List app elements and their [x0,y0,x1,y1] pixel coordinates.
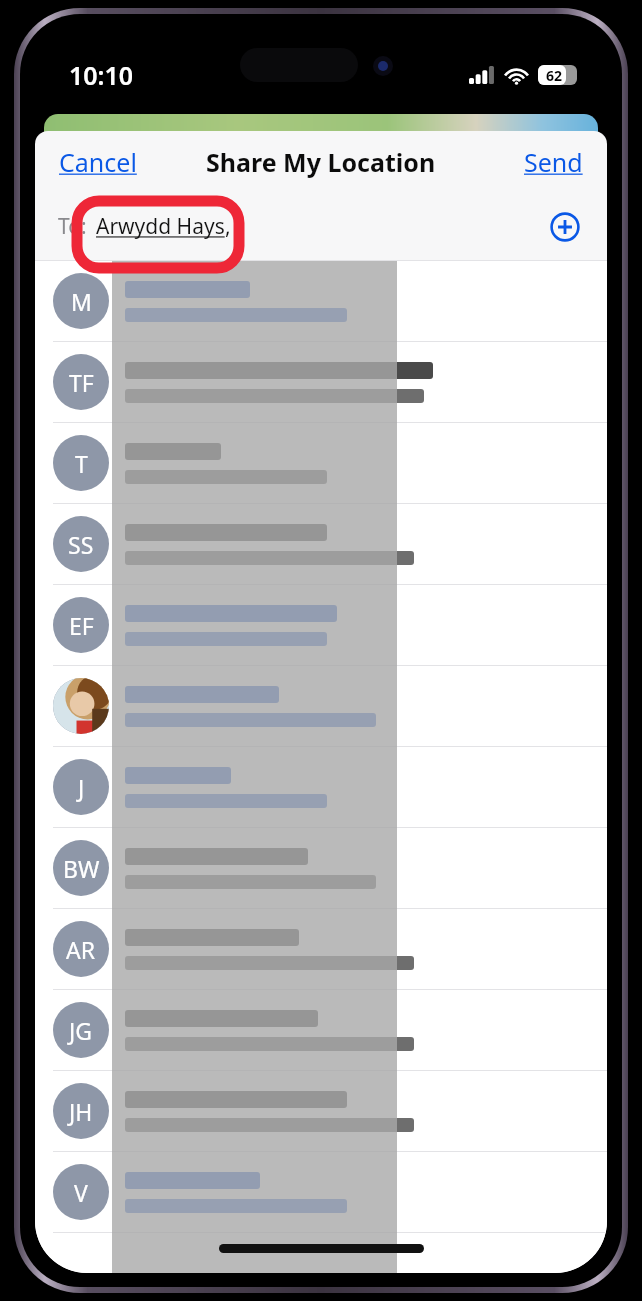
button[interactable] [35,666,607,747]
staticText: JH [69,1096,93,1127]
button[interactable]: To: [35,193,607,260]
staticText: SS [68,529,94,560]
staticText: BW [63,853,100,884]
button[interactable]: SS [35,504,607,585]
staticText: To: [58,212,87,241]
button[interactable]: J [35,747,607,828]
staticText: J [78,772,85,803]
button[interactable]: Send [500,137,607,187]
staticText: Share My Location [206,145,436,179]
staticText: V [74,1177,88,1208]
staticText: AR [66,934,96,965]
button[interactable]: JG [35,990,607,1071]
button[interactable]: T [35,423,607,504]
button[interactable]: M [35,261,607,342]
button[interactable]: Cancel [35,137,161,187]
button[interactable]: Add contact [545,207,585,247]
staticText: TF [69,367,94,398]
staticText: 62 [546,66,563,85]
button[interactable]: EF [35,585,607,666]
staticText: EF [69,610,94,641]
staticText: JG [69,1015,93,1046]
button[interactable]: TF [35,342,607,423]
staticText: Send [524,145,583,179]
staticText: M [71,286,92,317]
staticText: T [75,448,88,479]
staticText: , [225,212,231,241]
staticText: 10:10 [69,58,134,92]
button[interactable]: V [35,1152,607,1233]
staticText: Arwydd Hays [96,212,225,241]
button[interactable]: AR [35,909,607,990]
staticText: Cancel [59,145,137,179]
button[interactable]: JH [35,1071,607,1152]
button[interactable]: BW [35,828,607,909]
